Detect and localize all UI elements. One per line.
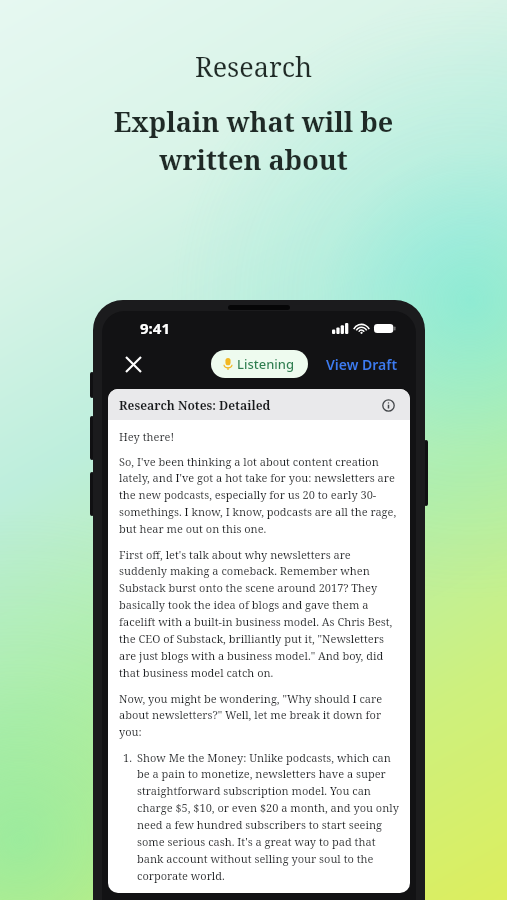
- button[interactable]: Close: [118, 349, 148, 379]
- button[interactable]: Listening: [211, 350, 308, 378]
- staticText: Research Notes: Detailed: [119, 397, 271, 413]
- staticText: Show Me the Money: Unlike podcasts, whic…: [137, 750, 399, 884]
- staticText: So, I've been thinking a lot about conte…: [119, 454, 399, 537]
- staticText: View Draft: [326, 355, 398, 374]
- staticText: 1.: [123, 750, 137, 765]
- staticText: Listening: [237, 355, 295, 373]
- button[interactable]: Research Notes: Detailed: [108, 389, 410, 420]
- staticText: Research: [26, 48, 481, 85]
- staticText: Hey there!: [119, 429, 175, 444]
- staticText: First off, let's talk about why newslett…: [119, 547, 399, 681]
- staticText: Explain what will be written about: [26, 103, 481, 178]
- button[interactable]: View Draft: [324, 351, 400, 378]
- staticText: 9:41: [140, 318, 170, 338]
- button[interactable]: Info: [377, 394, 399, 416]
- staticText: Now, you might be wondering, "Why should…: [119, 691, 399, 740]
